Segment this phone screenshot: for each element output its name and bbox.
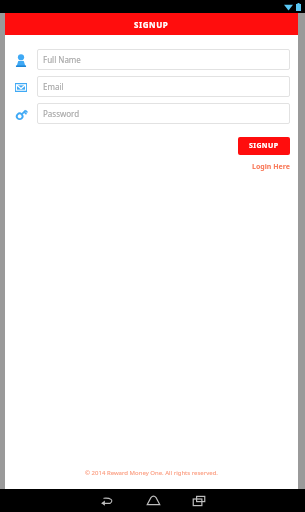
button[interactable]: Home — [130, 489, 176, 512]
button[interactable]: Back — [84, 489, 130, 512]
staticText: © 2014 Reward Money One. All rights rese… — [5, 469, 298, 477]
other: Email — [15, 83, 27, 92]
button[interactable]: SIGNUP — [238, 137, 290, 155]
button[interactable]: Password — [37, 103, 290, 124]
staticText: Full Name — [43, 54, 81, 65]
button[interactable]: Recent apps — [176, 489, 222, 512]
staticText: Password — [43, 108, 80, 119]
other: Full name — [15, 54, 27, 67]
other: Password — [15, 108, 28, 121]
staticText: SIGNUP — [134, 19, 169, 30]
button[interactable]: Full Name — [37, 49, 290, 70]
staticText: SIGNUP — [249, 141, 279, 151]
staticText: Email — [43, 81, 64, 92]
button[interactable]: Email — [37, 76, 290, 97]
staticText: Login Here — [252, 162, 290, 172]
button[interactable]: Login Here — [252, 162, 290, 172]
